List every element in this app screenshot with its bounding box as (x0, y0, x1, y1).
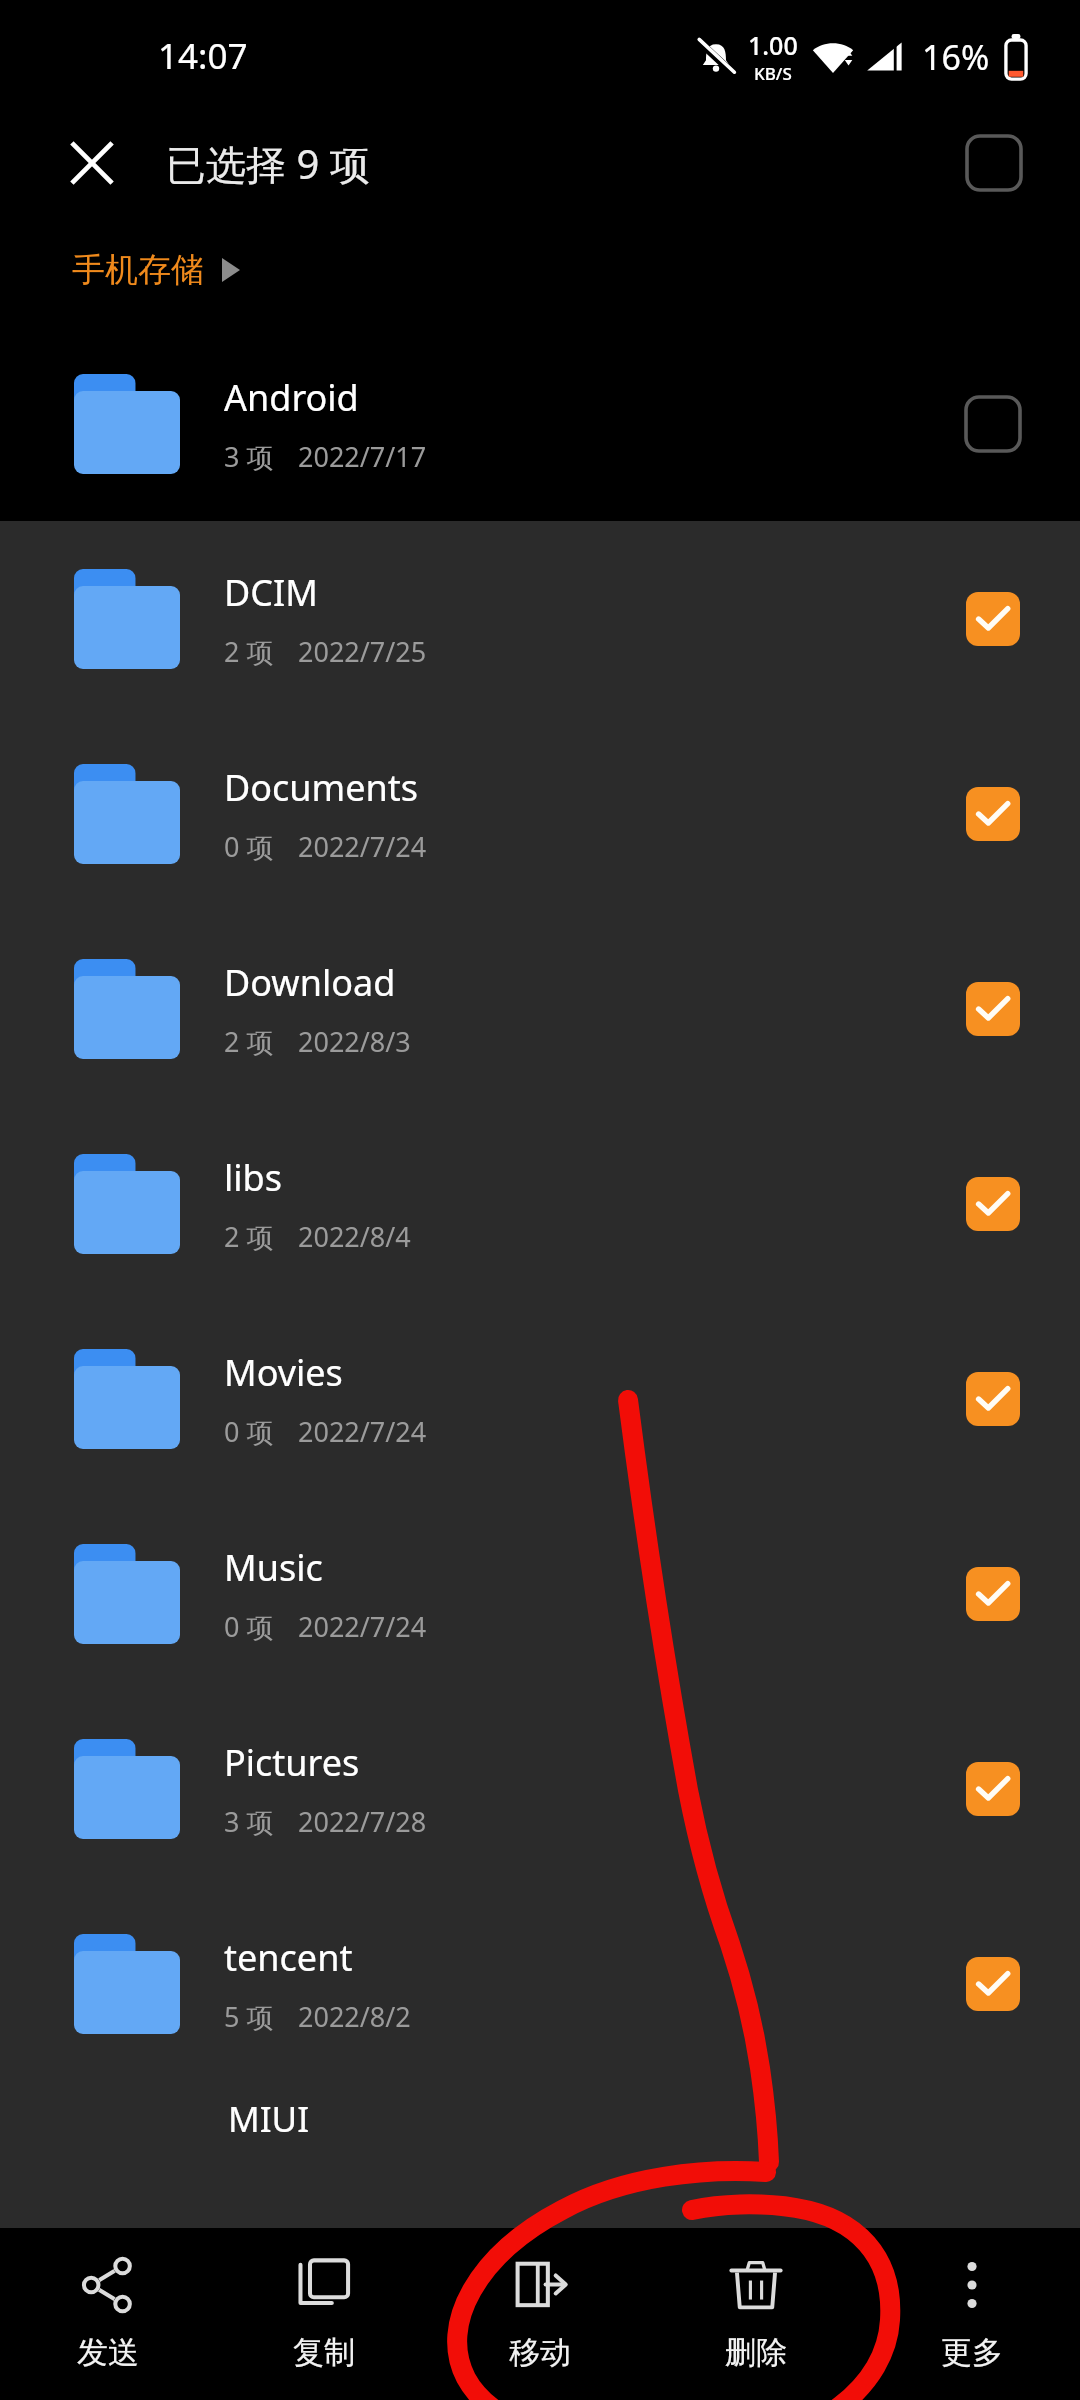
button[interactable]: Deselect Movies (944, 1350, 1042, 1448)
staticText: Documents (224, 763, 419, 812)
button[interactable]: 删除 (648, 2228, 864, 2400)
staticText: 复制 (293, 2333, 355, 2372)
staticText: 2 项 (224, 1218, 274, 1255)
staticText: 2022/7/17 (298, 438, 427, 475)
button[interactable]: Deselect Documents (944, 765, 1042, 863)
button[interactable]: Deselect Music (944, 1545, 1042, 1643)
staticText: 1.00 (748, 28, 798, 62)
button[interactable]: Music (0, 1496, 1080, 1691)
button[interactable]: DCIM (0, 521, 1080, 716)
staticText: Pictures (224, 1738, 360, 1787)
staticText: tencent (224, 1933, 353, 1982)
button[interactable]: Select Android (944, 375, 1042, 473)
staticText: libs (224, 1153, 282, 1202)
staticText: Download (224, 958, 396, 1007)
button[interactable]: libs (0, 1106, 1080, 1301)
button[interactable]: Select all (950, 119, 1038, 207)
staticText: 2022/8/2 (298, 1998, 411, 2035)
staticText: 移动 (509, 2333, 571, 2372)
staticText: 2022/8/3 (298, 1023, 411, 1060)
button[interactable]: Deselect DCIM (944, 570, 1042, 668)
button[interactable]: 移动 (432, 2228, 648, 2400)
staticText: 2 项 (224, 1023, 274, 1060)
staticText: 14:07 (158, 32, 248, 80)
button[interactable]: 更多 (864, 2228, 1080, 2400)
staticText: 发送 (77, 2333, 139, 2372)
button[interactable]: Android (0, 326, 1080, 521)
staticText: 5 项 (224, 1998, 274, 2035)
staticText: 手机存储 (72, 249, 204, 291)
button[interactable]: 手机存储 (72, 249, 240, 291)
staticText: 2022/8/4 (298, 1218, 411, 1255)
staticText: 已选择 9 项 (166, 136, 370, 191)
staticText: 删除 (725, 2333, 787, 2372)
staticText: Movies (224, 1348, 343, 1397)
button[interactable]: Documents (0, 716, 1080, 911)
button[interactable]: Deselect Download (944, 960, 1042, 1058)
button[interactable]: Movies (0, 1301, 1080, 1496)
staticText: 3 项 (224, 438, 274, 475)
button[interactable]: MIUI (0, 2081, 1080, 2228)
staticText: 2022/7/24 (298, 1413, 427, 1450)
staticText: Android (224, 373, 359, 422)
button[interactable]: 复制 (216, 2228, 432, 2400)
staticText: 0 项 (224, 1608, 274, 1645)
button[interactable]: Deselect Pictures (944, 1740, 1042, 1838)
staticText: KB/S (754, 62, 792, 85)
staticText: Music (224, 1543, 323, 1592)
button[interactable]: Download (0, 911, 1080, 1106)
staticText: MIUI (228, 2095, 310, 2143)
staticText: 2022/7/24 (298, 1608, 427, 1645)
staticText: 3 项 (224, 1803, 274, 1840)
staticText: 2022/7/24 (298, 828, 427, 865)
staticText: 2022/7/25 (298, 633, 427, 670)
button[interactable]: Close selection (54, 125, 130, 201)
staticText: 2 项 (224, 633, 274, 670)
staticText: 0 项 (224, 828, 274, 865)
staticText: 更多 (941, 2333, 1003, 2372)
staticText: DCIM (224, 568, 318, 617)
button[interactable]: Pictures (0, 1691, 1080, 1886)
staticText: 2022/7/28 (298, 1803, 427, 1840)
staticText: 16% (922, 34, 990, 80)
button[interactable]: 发送 (0, 2228, 216, 2400)
button[interactable]: Deselect libs (944, 1155, 1042, 1253)
button[interactable]: Deselect tencent (944, 1935, 1042, 2033)
staticText: 0 项 (224, 1413, 274, 1450)
button[interactable]: tencent (0, 1886, 1080, 2081)
